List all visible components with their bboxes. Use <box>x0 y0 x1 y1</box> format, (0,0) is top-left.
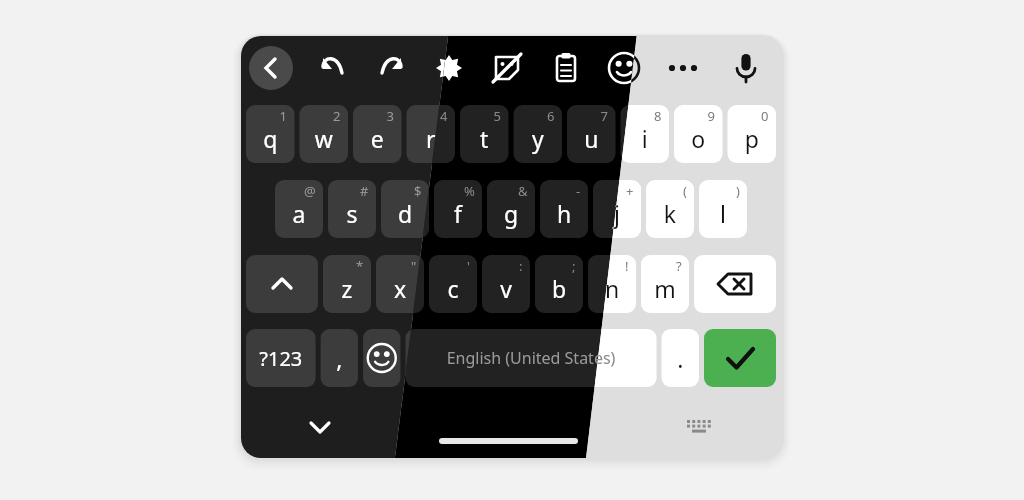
button[interactable]: o <box>674 105 723 163</box>
button[interactable]: i <box>621 105 670 163</box>
button[interactable]: y <box>514 105 563 163</box>
button[interactable]: m <box>641 255 689 313</box>
button[interactable]: k <box>646 180 694 238</box>
button[interactable]: t <box>460 105 509 163</box>
button[interactable]: Hide keyboard <box>300 407 340 447</box>
button[interactable]: x <box>376 255 424 313</box>
button[interactable]: p <box>728 105 777 163</box>
button[interactable]: z <box>323 255 371 313</box>
button[interactable]: Settings <box>429 48 469 88</box>
button[interactable]: Shift <box>246 255 318 313</box>
button[interactable]: s <box>328 180 376 238</box>
button[interactable]: Enter <box>704 329 776 387</box>
button[interactable]: a <box>275 180 323 238</box>
button[interactable]: b <box>535 255 583 313</box>
button[interactable]: . <box>662 329 699 387</box>
button[interactable]: , <box>321 329 358 387</box>
button[interactable]: Voice input <box>726 48 766 88</box>
button[interactable]: ?123 <box>246 329 316 387</box>
button[interactable]: h <box>540 180 588 238</box>
button[interactable]: g <box>487 180 535 238</box>
button[interactable]: Backspace <box>694 255 776 313</box>
button[interactable]: e <box>353 105 402 163</box>
button[interactable]: c <box>429 255 477 313</box>
button[interactable]: q <box>246 105 295 163</box>
button[interactable]: Stickers off <box>487 48 527 88</box>
button[interactable]: l <box>699 180 747 238</box>
button[interactable]: Switch keyboard <box>679 406 719 446</box>
button[interactable]: d <box>381 180 429 238</box>
button[interactable]: Emoji <box>363 329 400 387</box>
button[interactable]: Undo <box>313 48 353 88</box>
button[interactable]: u <box>567 105 616 163</box>
button[interactable]: English (United States) <box>405 329 656 387</box>
button[interactable]: n <box>588 255 636 313</box>
button[interactable]: v <box>482 255 530 313</box>
button[interactable]: Back <box>249 46 293 90</box>
button[interactable]: Emoji <box>604 48 644 88</box>
button[interactable]: Redo <box>371 48 411 88</box>
button[interactable]: w <box>300 105 349 163</box>
button[interactable]: Clipboard <box>546 48 586 88</box>
button[interactable]: f <box>434 180 482 238</box>
button[interactable]: More options <box>663 48 703 88</box>
button[interactable]: r <box>407 105 456 163</box>
button[interactable]: j <box>593 180 641 238</box>
